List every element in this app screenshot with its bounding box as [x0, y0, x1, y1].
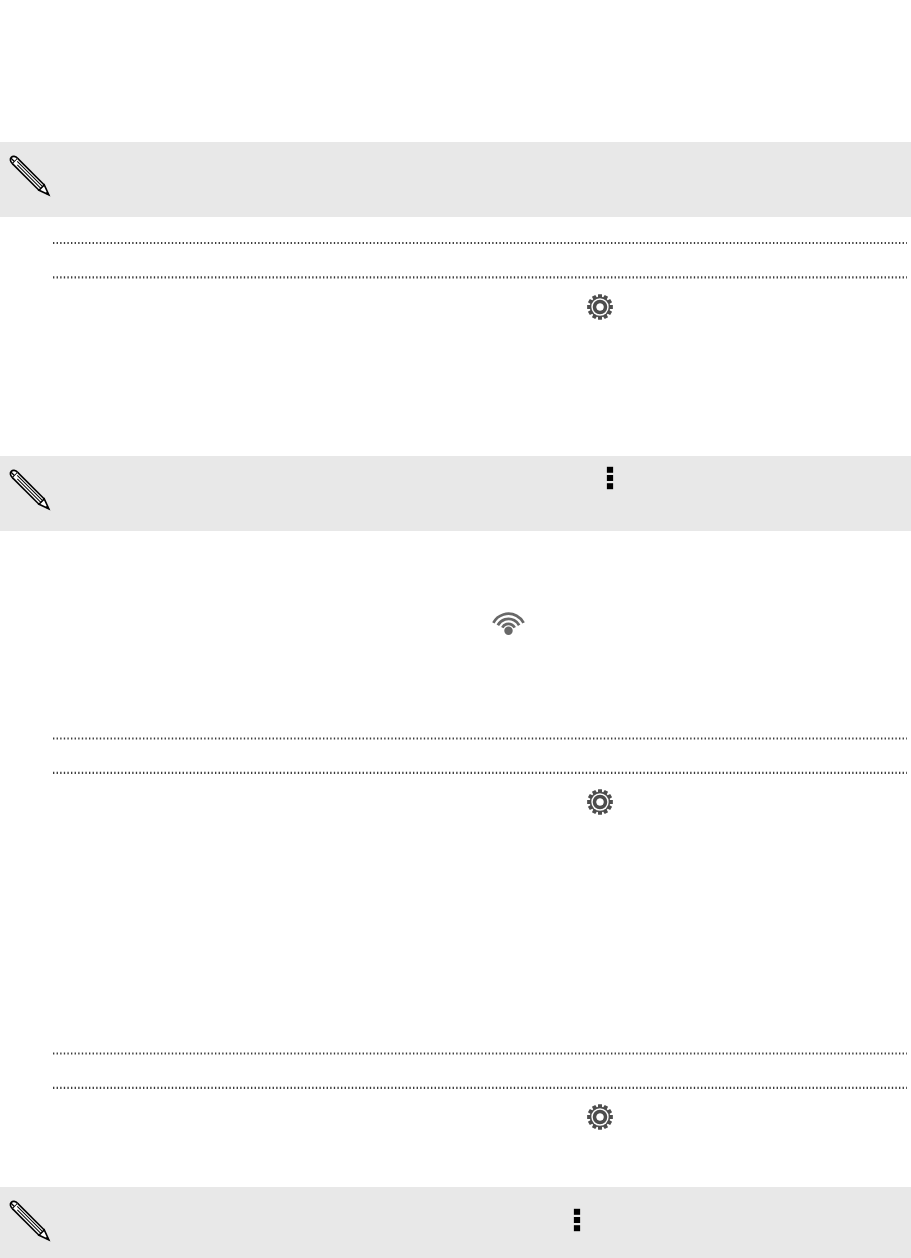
button[interactable]: Edit note — [8, 462, 52, 506]
button[interactable]: More options — [600, 463, 620, 493]
button[interactable]: Settings — [587, 294, 613, 320]
button[interactable]: Settings — [587, 789, 613, 815]
button[interactable]: Edit note — [8, 148, 52, 192]
button[interactable]: More options — [567, 1205, 587, 1235]
button[interactable]: Wi-Fi — [492, 607, 525, 635]
button[interactable]: Edit note — [8, 1193, 52, 1237]
button[interactable]: Note — [0, 1187, 911, 1258]
button[interactable]: Note — [0, 456, 911, 531]
button[interactable]: Settings — [587, 1104, 613, 1130]
button[interactable]: Note — [0, 142, 911, 217]
